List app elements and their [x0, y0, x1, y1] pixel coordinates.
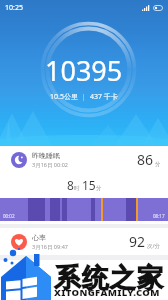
- staticText: |: [78, 92, 90, 102]
- button[interactable]: 昨晚睡眠: [0, 146, 168, 173]
- staticText: 心率: [32, 233, 46, 242]
- staticText: 10395: [45, 52, 123, 89]
- staticText: 次/分: [147, 242, 161, 250]
- staticText: 3月16日 09:47: [32, 243, 68, 251]
- staticText: 10.5公里: [50, 92, 78, 102]
- staticText: 92: [129, 232, 146, 251]
- staticText: 437 千卡: [90, 92, 118, 102]
- staticText: 86: [137, 150, 154, 169]
- staticText: XITONGFAMILY.COM: [54, 286, 160, 299]
- button[interactable]: 心率: [0, 228, 168, 255]
- staticText: 系统之家: [54, 261, 165, 294]
- staticText: 分: [155, 161, 161, 168]
- staticText: 时: [74, 185, 80, 192]
- staticText: 15: [82, 177, 96, 193]
- staticText: 08:17: [153, 213, 165, 219]
- staticText: 10:25: [5, 3, 23, 13]
- staticText: 分: [96, 185, 102, 192]
- staticText: 昨晚睡眠: [32, 151, 60, 160]
- staticText: 3月16日 00:02: [32, 161, 68, 169]
- staticText: 00:02: [3, 213, 15, 219]
- staticText: 8: [67, 177, 74, 193]
